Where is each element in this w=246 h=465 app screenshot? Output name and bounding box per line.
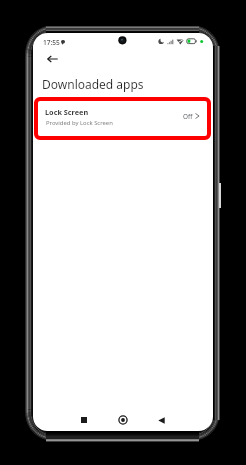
staticText: 17:55 (43, 38, 60, 47)
button[interactable]: Back (40, 50, 64, 70)
staticText: Off (183, 112, 193, 121)
staticText: Provided by Lock Screen (46, 119, 113, 127)
button[interactable]: Recent apps (74, 410, 94, 430)
button[interactable]: Home (113, 410, 133, 430)
staticText: Downloaded apps (42, 76, 144, 92)
button[interactable]: Back (151, 410, 171, 430)
staticText: Lock Screen (45, 107, 89, 117)
button[interactable]: Lock Screen (34, 97, 211, 140)
